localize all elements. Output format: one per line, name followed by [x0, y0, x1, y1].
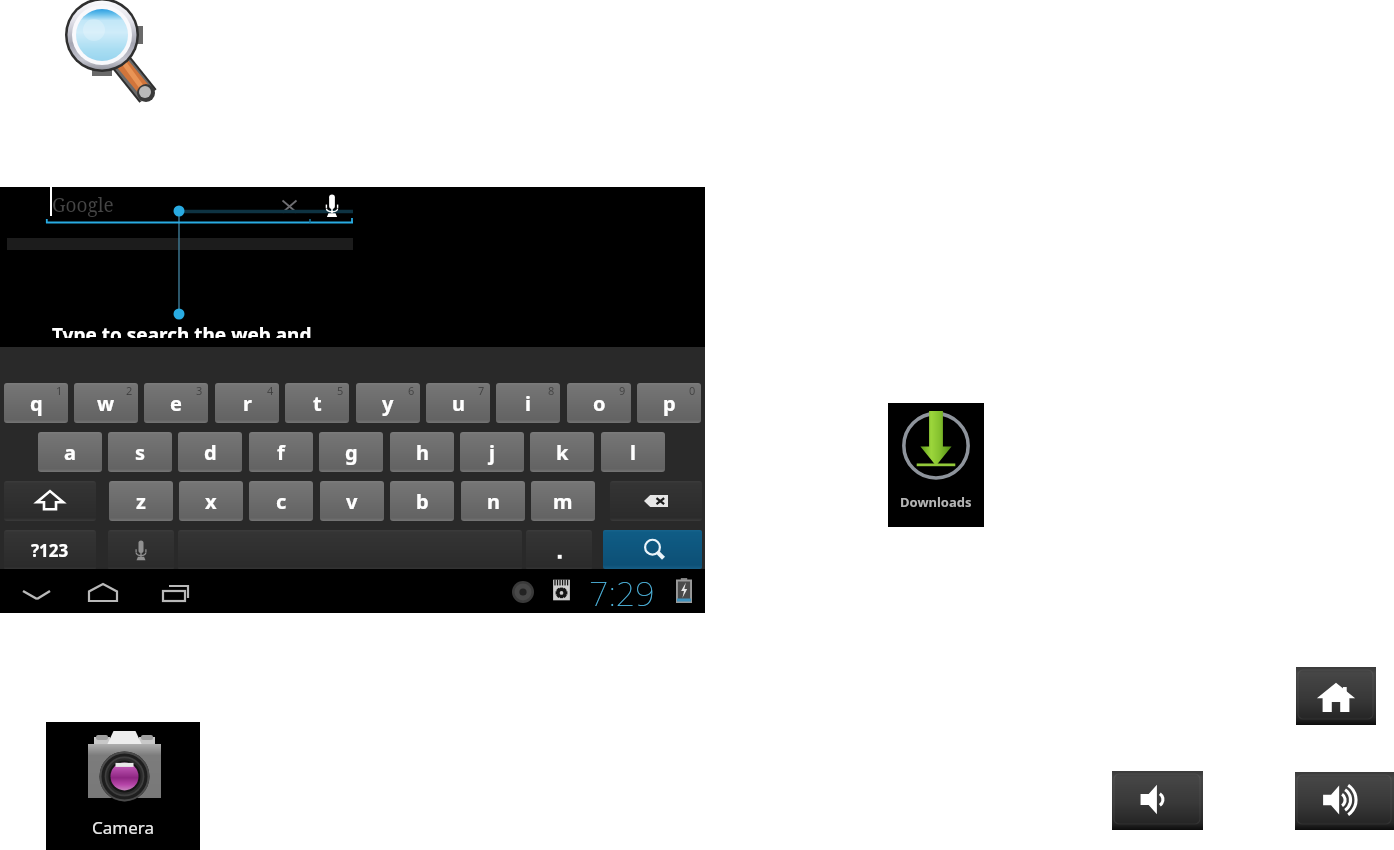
staticText: w	[97, 390, 115, 417]
staticText: Camera	[92, 816, 154, 839]
staticText: b	[416, 488, 429, 515]
button[interactable]	[610, 481, 702, 521]
button[interactable]: f	[249, 432, 313, 472]
button[interactable]	[4, 481, 96, 521]
button[interactable]: n	[461, 481, 525, 521]
staticText: 4	[267, 383, 274, 398]
button[interactable]	[108, 530, 174, 570]
button[interactable]: t	[285, 383, 349, 423]
staticText: y	[382, 390, 394, 417]
button[interactable]: Volume up	[1295, 772, 1394, 830]
staticText: t	[313, 390, 322, 417]
button[interactable]: d	[178, 432, 242, 472]
button[interactable]: ?123	[4, 530, 96, 570]
button[interactable]: a	[38, 432, 102, 472]
staticText: u	[452, 390, 465, 417]
staticText: Downloads	[900, 493, 972, 511]
staticText: n	[487, 488, 500, 515]
button[interactable]: z	[109, 481, 173, 521]
staticText: Google	[52, 192, 114, 218]
button[interactable]: w	[74, 383, 138, 423]
button[interactable]: g	[319, 432, 383, 472]
button[interactable]: Hide keyboard	[14, 580, 60, 604]
button[interactable]: Home	[1296, 667, 1376, 725]
button[interactable]: p	[637, 383, 701, 423]
staticText: 1	[56, 383, 63, 398]
staticText: o	[593, 390, 606, 417]
button[interactable]: i	[496, 383, 560, 423]
staticText: 3	[196, 383, 203, 398]
button[interactable]: m	[531, 481, 595, 521]
button[interactable]	[178, 530, 522, 570]
staticText: l	[630, 439, 636, 466]
staticText: q	[30, 390, 43, 417]
staticText: g	[345, 439, 358, 466]
button[interactable]: k	[530, 432, 594, 472]
button[interactable]: Home	[83, 579, 129, 605]
button[interactable]: o	[567, 383, 631, 423]
staticText: 5	[337, 383, 344, 398]
staticText: i	[525, 390, 531, 417]
staticText: h	[416, 439, 429, 466]
staticText: k	[556, 439, 569, 466]
staticText: ?123	[31, 539, 69, 562]
button[interactable]: s	[108, 432, 172, 472]
button[interactable]: j	[460, 432, 524, 472]
staticText: 7:29	[589, 570, 655, 614]
staticText: 7	[478, 383, 485, 398]
staticText: z	[136, 488, 146, 515]
staticText: p	[663, 390, 676, 417]
staticText: j	[489, 439, 495, 466]
button[interactable]: v	[320, 481, 384, 521]
staticText: 8	[548, 383, 555, 398]
staticText: d	[204, 439, 217, 466]
button[interactable]: c	[249, 481, 313, 521]
button[interactable]: l	[601, 432, 665, 472]
button[interactable]: Volume down	[1112, 771, 1203, 830]
button[interactable]: h	[390, 432, 454, 472]
button[interactable]: b	[390, 481, 454, 521]
staticText: r	[243, 390, 252, 417]
staticText: s	[135, 439, 146, 466]
staticText: f	[277, 439, 285, 466]
staticText: x	[205, 488, 217, 515]
button[interactable]: q	[4, 383, 68, 423]
staticText: 6	[408, 383, 415, 398]
button[interactable]: y	[356, 383, 420, 423]
button[interactable]: u	[426, 383, 490, 423]
button[interactable]: r	[215, 383, 279, 423]
button[interactable]: Downloads	[888, 403, 984, 527]
staticText: e	[170, 390, 182, 417]
staticText: 0	[689, 383, 696, 398]
button[interactable]: Search	[603, 530, 702, 569]
button[interactable]	[526, 530, 592, 570]
button[interactable]: x	[179, 481, 243, 521]
staticText: m	[553, 488, 573, 515]
button[interactable]: Camera	[46, 722, 200, 850]
staticText: Type to search the web and	[52, 322, 312, 338]
staticText: c	[276, 488, 287, 515]
button[interactable]: Recent apps	[155, 579, 201, 605]
staticText: 2	[126, 383, 133, 398]
staticText: a	[64, 439, 76, 466]
button[interactable]: e	[144, 383, 208, 423]
staticText: v	[346, 488, 358, 515]
staticText: 9	[619, 383, 626, 398]
